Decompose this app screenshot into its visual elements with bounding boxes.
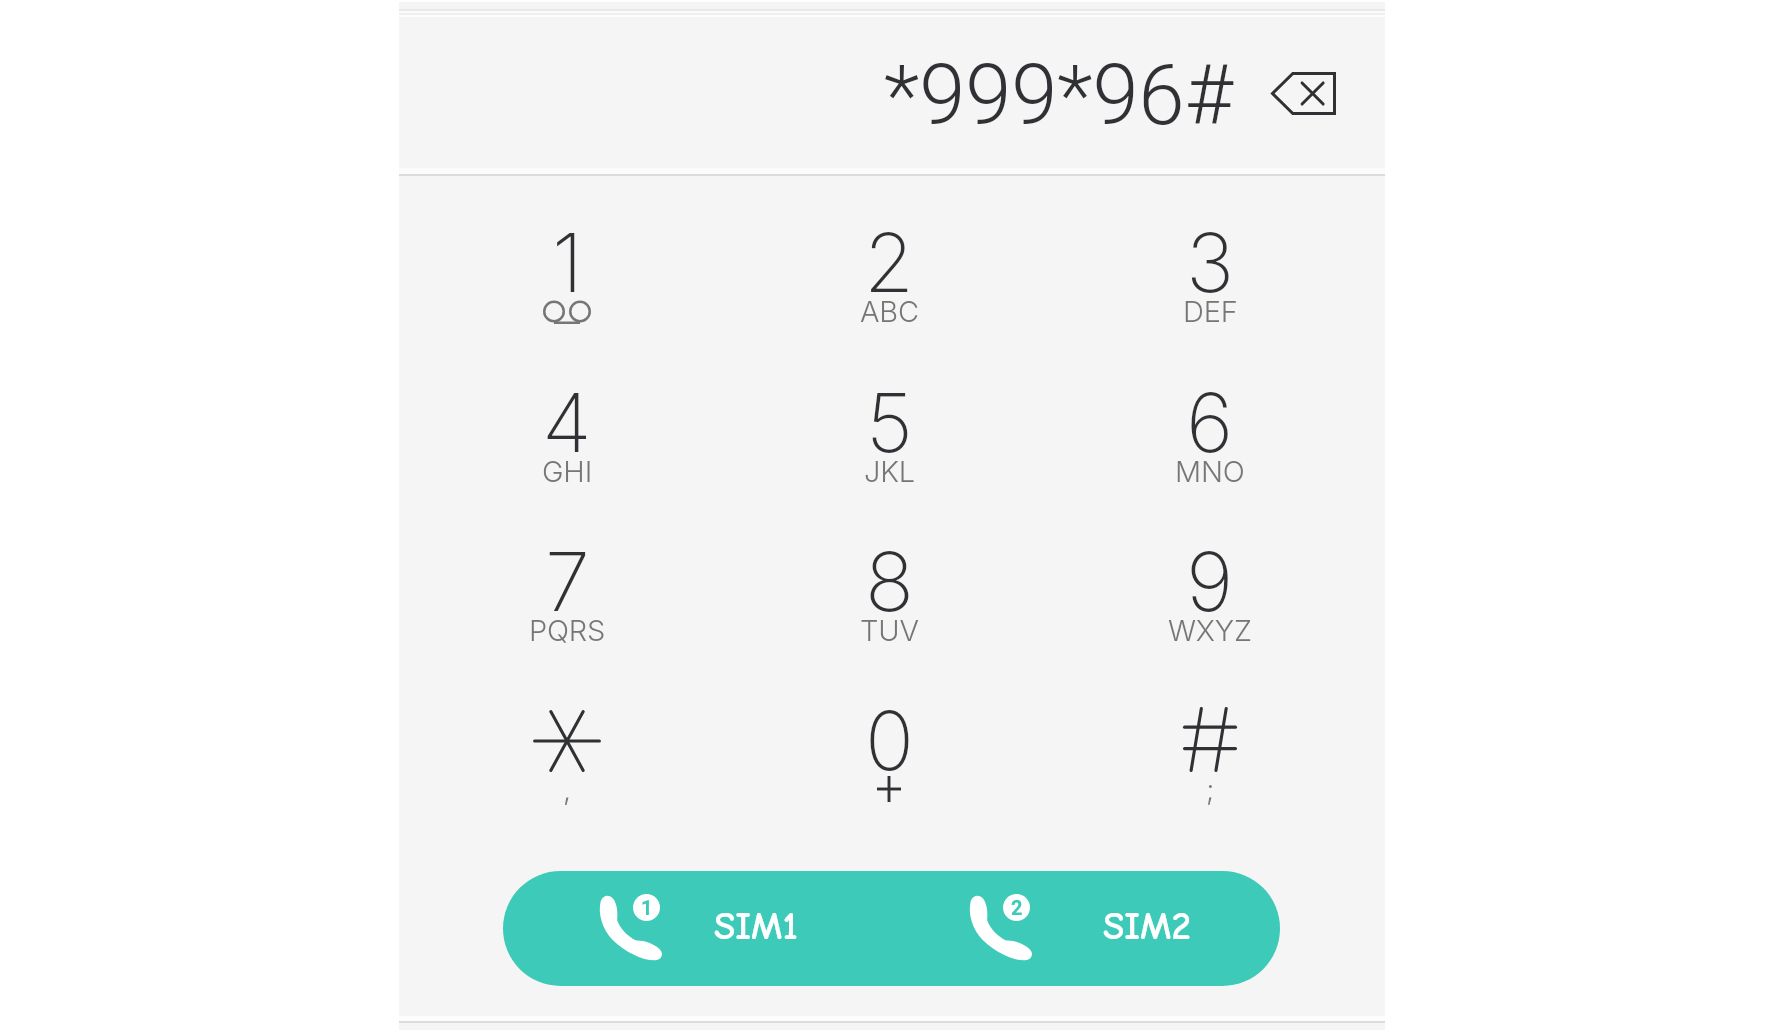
staticText: 5 bbox=[866, 374, 913, 472]
staticText: 2 bbox=[1011, 896, 1023, 919]
staticText: 9 bbox=[1186, 533, 1234, 631]
button[interactable]: 1 bbox=[503, 871, 891, 986]
staticText: TUV bbox=[860, 613, 919, 648]
staticText: ABC bbox=[860, 294, 919, 329]
staticText: , bbox=[563, 772, 571, 807]
button[interactable]: Dial 9 bbox=[1060, 521, 1360, 673]
staticText: ; bbox=[1206, 772, 1215, 807]
button[interactable]: Dial 2 bbox=[739, 202, 1039, 354]
button[interactable]: Dial 1 bbox=[417, 202, 717, 354]
staticText: DEF bbox=[1183, 294, 1238, 329]
staticText: WXYZ bbox=[1168, 613, 1252, 648]
staticText: GHI bbox=[542, 454, 593, 489]
staticText: JKL bbox=[864, 454, 915, 489]
staticText: 1 bbox=[552, 214, 583, 312]
staticText: *999*96# bbox=[884, 47, 1233, 144]
button[interactable]: Dialled number *999*96# bbox=[799, 45, 1233, 145]
button[interactable]: Dial * bbox=[417, 680, 717, 832]
button[interactable]: Dial 6 bbox=[1060, 362, 1360, 514]
staticText: PQRS bbox=[529, 613, 606, 648]
button[interactable]: Dial 4 bbox=[417, 362, 717, 514]
button[interactable]: Dial 0 bbox=[739, 680, 1039, 832]
staticText: SIM1 bbox=[714, 904, 798, 949]
button[interactable]: Dial 8 bbox=[739, 521, 1039, 673]
staticText: 2 bbox=[864, 214, 914, 312]
staticText: 3 bbox=[1186, 214, 1235, 312]
button[interactable]: Dial 7 bbox=[417, 521, 717, 673]
staticText: 8 bbox=[865, 533, 914, 631]
staticText: SIM2 bbox=[1103, 904, 1191, 949]
button[interactable]: 2 bbox=[891, 871, 1280, 986]
staticText: 0 bbox=[865, 692, 914, 790]
staticText: 4 bbox=[542, 374, 592, 472]
staticText: MNO bbox=[1175, 454, 1245, 489]
staticText: 7 bbox=[545, 533, 590, 631]
button[interactable]: Dial 5 bbox=[739, 362, 1039, 514]
staticText: 6 bbox=[1186, 374, 1234, 472]
button[interactable]: Dial 3 bbox=[1060, 202, 1360, 354]
button[interactable]: Dial # bbox=[1060, 680, 1360, 832]
button[interactable]: Backspace bbox=[1251, 50, 1355, 136]
staticText: 1 bbox=[641, 896, 653, 919]
